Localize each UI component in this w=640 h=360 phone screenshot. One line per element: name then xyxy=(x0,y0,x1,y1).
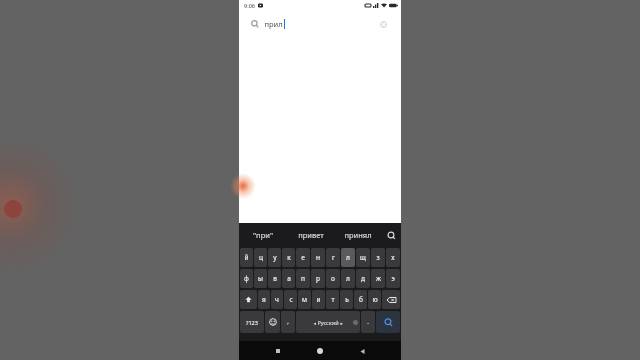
button[interactable]: б xyxy=(354,290,367,309)
button[interactable]: Recent apps xyxy=(269,342,287,360)
button[interactable]: Shift xyxy=(240,290,257,309)
staticText: р xyxy=(316,274,320,283)
button[interactable]: , xyxy=(281,311,295,333)
button[interactable]: ◂ xyxy=(296,311,360,333)
staticText: 9:06 xyxy=(244,2,255,9)
staticText: ь xyxy=(345,295,349,304)
staticText: л xyxy=(346,274,350,283)
staticText: прил xyxy=(264,19,283,29)
button[interactable]: ?123 xyxy=(240,311,264,333)
button[interactable]: ц xyxy=(254,248,267,267)
staticText: ?123 xyxy=(246,319,258,326)
staticText: привет xyxy=(298,230,324,240)
button[interactable]: м xyxy=(298,290,311,309)
staticText: н xyxy=(316,253,320,262)
button[interactable]: й xyxy=(240,248,253,267)
button[interactable]: Search xyxy=(246,14,394,34)
button[interactable]: х xyxy=(386,248,400,267)
button[interactable]: е xyxy=(296,248,310,267)
button[interactable]: щ xyxy=(356,248,370,267)
button[interactable]: о xyxy=(326,269,340,288)
staticText: ы xyxy=(258,274,263,283)
button[interactable]: п xyxy=(296,269,310,288)
button[interactable]: а xyxy=(282,269,295,288)
staticText: ц xyxy=(259,253,263,262)
staticText: принял xyxy=(344,230,372,240)
button[interactable]: р xyxy=(311,269,325,288)
button[interactable]: с xyxy=(284,290,297,309)
staticText: ◂ xyxy=(313,320,317,326)
staticText: ч xyxy=(275,295,279,304)
staticText: , xyxy=(287,318,289,326)
button[interactable]: Search suggestions xyxy=(381,223,401,247)
button[interactable]: привет xyxy=(287,223,334,247)
staticText: б xyxy=(359,295,363,304)
button[interactable]: э xyxy=(386,269,400,288)
staticText: "при" xyxy=(253,230,273,240)
staticText: х xyxy=(391,253,395,262)
button[interactable]: Back xyxy=(353,342,371,360)
staticText: я xyxy=(262,295,266,304)
staticText: о xyxy=(331,274,335,283)
button[interactable]: г xyxy=(326,248,340,267)
staticText: щ xyxy=(360,253,366,262)
other: Search xyxy=(251,20,259,28)
button[interactable]: и xyxy=(312,290,325,309)
button[interactable]: н xyxy=(311,248,325,267)
button[interactable]: в xyxy=(268,269,281,288)
button[interactable]: я xyxy=(258,290,270,309)
button[interactable]: ф xyxy=(240,269,253,288)
button[interactable]: т xyxy=(326,290,339,309)
staticText: м xyxy=(302,295,307,304)
button[interactable]: ы xyxy=(254,269,267,288)
button[interactable]: Clear xyxy=(377,18,389,30)
staticText: Русский xyxy=(317,319,339,326)
button[interactable]: "при" xyxy=(239,223,287,247)
staticText: с xyxy=(289,295,293,304)
button[interactable]: Backspace xyxy=(382,290,400,309)
button[interactable]: ж xyxy=(371,269,385,288)
staticText: у xyxy=(273,253,277,262)
staticText: е xyxy=(301,253,305,262)
staticText: з xyxy=(376,253,380,262)
staticText: э xyxy=(391,274,395,283)
button[interactable]: Home xyxy=(311,342,329,360)
staticText: д xyxy=(361,274,365,283)
button[interactable]: к xyxy=(282,248,295,267)
button[interactable]: л xyxy=(341,248,355,267)
staticText: в xyxy=(273,274,277,283)
button[interactable]: у xyxy=(268,248,281,267)
staticText: т xyxy=(331,295,335,304)
staticText: п xyxy=(301,274,305,283)
staticText: и xyxy=(316,295,321,304)
staticText: к xyxy=(287,253,291,262)
staticText: л xyxy=(346,253,350,262)
staticText: . xyxy=(367,318,369,326)
button[interactable]: д xyxy=(356,269,370,288)
staticText: ж xyxy=(376,274,381,283)
staticText: г xyxy=(332,253,335,262)
button[interactable]: ю xyxy=(368,290,381,309)
button[interactable]: . xyxy=(361,311,375,333)
button[interactable]: л xyxy=(341,269,355,288)
button[interactable]: ь xyxy=(340,290,353,309)
staticText: ▸ xyxy=(339,320,343,326)
staticText: ф xyxy=(244,274,249,283)
button[interactable]: з xyxy=(371,248,385,267)
button[interactable]: Emoji xyxy=(265,311,280,333)
staticText: й xyxy=(244,253,249,262)
staticText: ю xyxy=(372,295,378,304)
button[interactable]: ч xyxy=(271,290,283,309)
button[interactable]: принял xyxy=(334,223,381,247)
staticText: а xyxy=(287,274,291,283)
button[interactable]: Search xyxy=(376,311,400,333)
